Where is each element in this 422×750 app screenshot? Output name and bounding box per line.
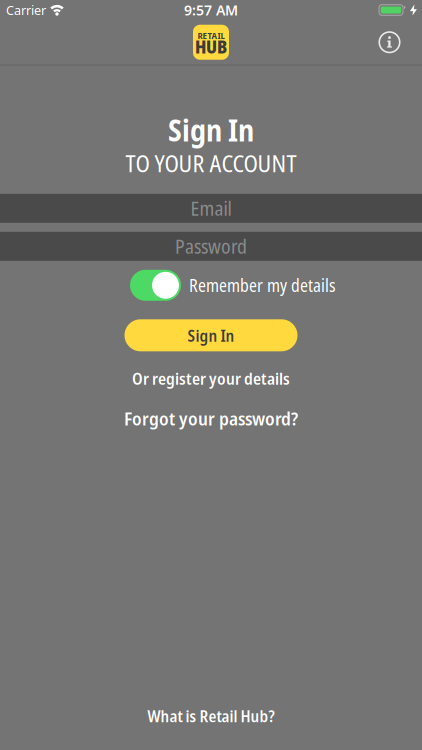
staticText: Sign In	[168, 109, 254, 150]
button[interactable]: Info	[379, 32, 400, 53]
button[interactable]: Password	[0, 232, 422, 261]
button[interactable]: Retail Hub	[193, 25, 229, 60]
button[interactable]: What is Retail Hub?	[147, 705, 274, 727]
staticText: What is Retail Hub?	[147, 705, 274, 727]
button[interactable]: Forgot your password?	[124, 407, 298, 429]
staticText: 9:57 AM	[184, 0, 238, 20]
staticText: Forgot your password?	[124, 406, 298, 431]
staticText: Sign In	[187, 324, 234, 346]
staticText: Carrier	[6, 1, 46, 19]
button[interactable]: Or register your details	[132, 367, 290, 389]
staticText: TO YOUR ACCOUNT	[125, 147, 296, 179]
staticText: Password	[175, 233, 247, 259]
staticText: RETAIL	[197, 29, 224, 42]
staticText: Remember my details	[189, 274, 336, 297]
button[interactable]: Email	[0, 194, 422, 223]
staticText: Email	[190, 195, 231, 221]
staticText: HUB	[195, 35, 227, 58]
button[interactable]: Remember my details	[130, 270, 181, 301]
button[interactable]: Sign In	[124, 319, 297, 351]
staticText: Or register your details	[132, 367, 290, 390]
